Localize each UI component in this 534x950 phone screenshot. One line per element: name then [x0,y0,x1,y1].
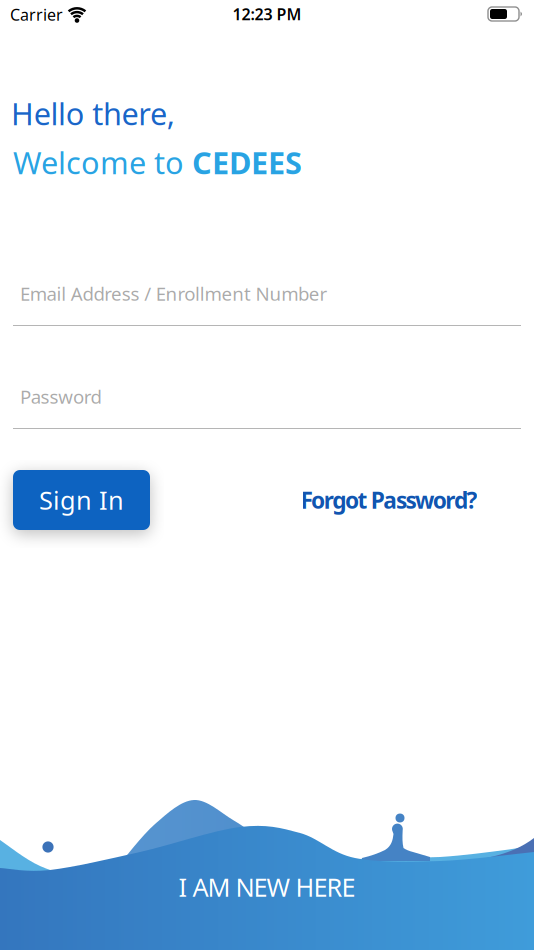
staticText: CEDEES [192,142,302,183]
button[interactable]: Email Address / Enrollment Number [13,281,521,326]
staticText: Sign In [39,483,124,517]
staticText: Email Address / Enrollment Number [20,281,328,306]
staticText: Welcome to [13,142,192,183]
staticText: Forgot Password? [300,485,477,515]
button[interactable]: Password [13,384,521,429]
staticText: 12:23 PM [232,3,301,25]
button[interactable]: Forgot Password? [300,485,477,515]
staticText: Hello there, [11,93,175,134]
staticText: I AM NEW HERE [178,870,355,904]
button[interactable]: I AM NEW HERE [178,870,355,904]
staticText: Carrier [10,4,63,25]
button[interactable]: Sign In [13,470,150,530]
staticText: Password [20,384,102,409]
